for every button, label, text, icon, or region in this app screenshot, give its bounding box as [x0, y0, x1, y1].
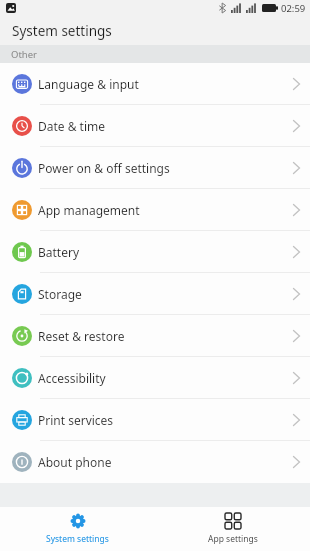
staticText: System settings: [12, 22, 112, 40]
staticText: Reset & restore: [38, 328, 125, 344]
staticText: Print services: [38, 412, 114, 428]
staticText: Battery: [38, 244, 80, 260]
button[interactable]: App management: [0, 189, 310, 231]
button[interactable]: About phone: [0, 441, 310, 483]
staticText: Storage: [38, 286, 82, 302]
staticText: App management: [38, 202, 140, 218]
staticText: System settings: [46, 533, 109, 545]
button[interactable]: Reset & restore: [0, 315, 310, 357]
staticText: Other: [11, 48, 38, 61]
button[interactable]: Language & input: [0, 63, 310, 105]
button[interactable]: System settings: [0, 507, 155, 551]
button[interactable]: Power on & off settings: [0, 147, 310, 189]
staticText: Power on & off settings: [38, 160, 170, 176]
staticText: App settings: [208, 533, 258, 545]
button[interactable]: Accessibility: [0, 357, 310, 399]
button[interactable]: Storage: [0, 273, 310, 315]
staticText: Date & time: [38, 118, 106, 134]
button[interactable]: Print services: [0, 399, 310, 441]
button[interactable]: App settings: [155, 507, 310, 551]
button[interactable]: Date & time: [0, 105, 310, 147]
staticText: 02:59: [281, 2, 306, 15]
staticText: About phone: [38, 454, 112, 470]
staticText: Language & input: [38, 76, 139, 92]
button[interactable]: Battery: [0, 231, 310, 273]
staticText: Accessibility: [38, 370, 106, 386]
